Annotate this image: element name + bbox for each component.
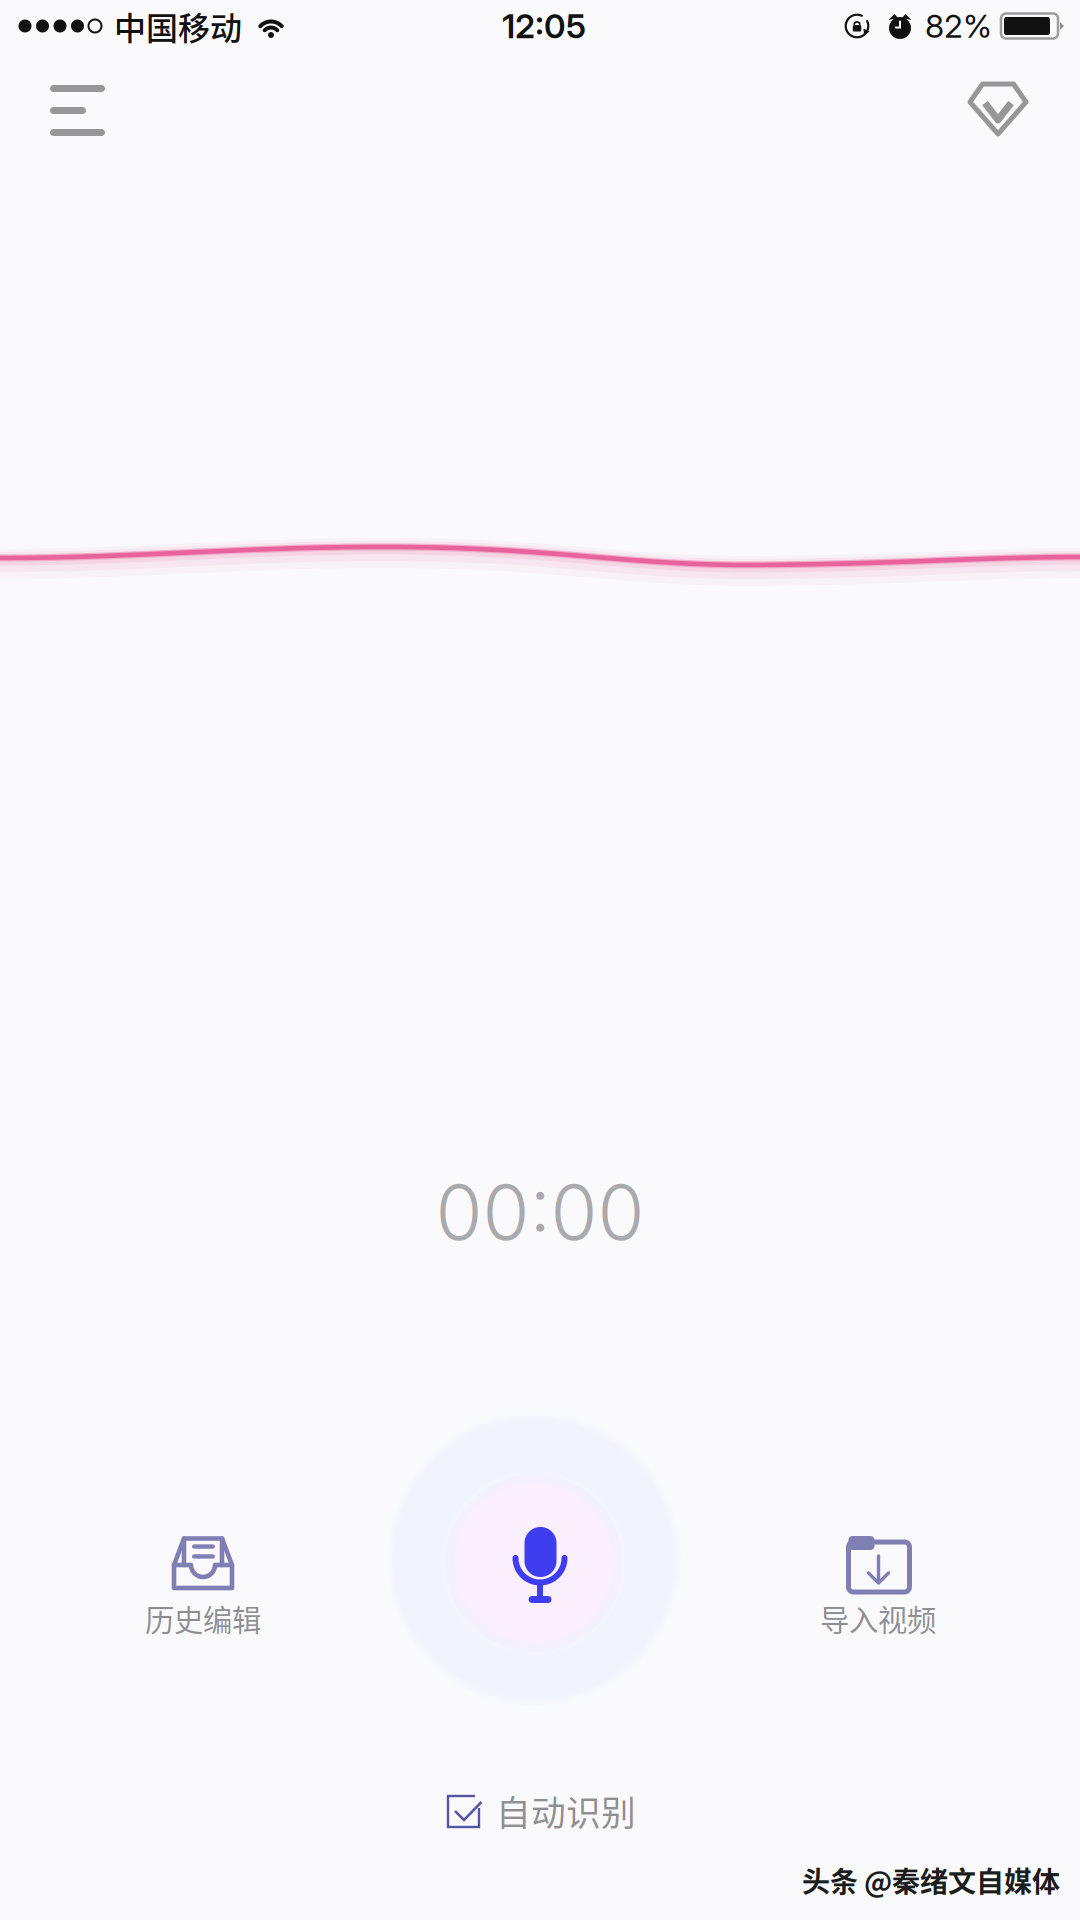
- staticText: 12:05: [502, 6, 586, 46]
- button[interactable]: 导入视频: [758, 1534, 998, 1664]
- button[interactable]: Record: [381, 1406, 687, 1712]
- button[interactable]: VIP: [938, 58, 1058, 158]
- button[interactable]: 历史编辑: [83, 1534, 323, 1664]
- staticText: 导入视频: [820, 1597, 936, 1639]
- staticText: 82%: [925, 7, 992, 45]
- button[interactable]: 自动识别: [446, 1782, 686, 1840]
- staticText: 中国移动: [114, 3, 242, 49]
- staticText: 历史编辑: [145, 1597, 261, 1639]
- staticText: 00:00: [435, 1166, 644, 1258]
- staticText: 头条 @秦绪文自媒体: [802, 1860, 1060, 1900]
- staticText: 自动识别: [496, 1786, 636, 1836]
- button[interactable]: Menu: [22, 62, 137, 157]
